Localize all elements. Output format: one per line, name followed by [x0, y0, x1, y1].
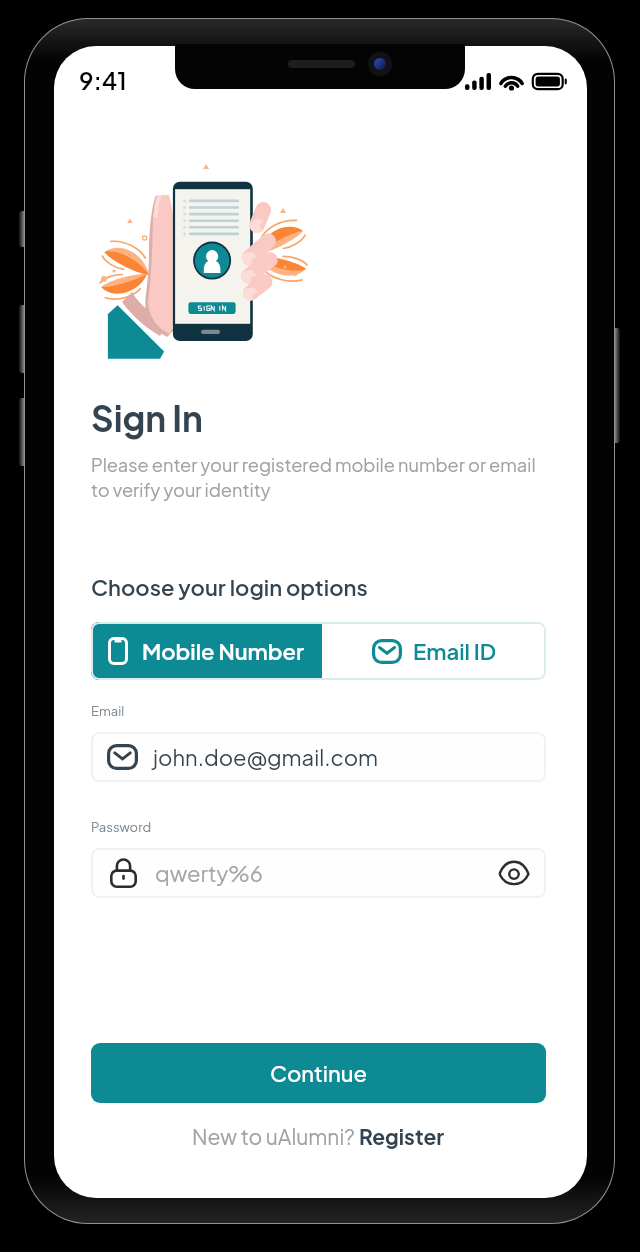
button[interactable]: qwerty%6 — [91, 848, 546, 898]
staticText: Password — [91, 819, 152, 835]
button[interactable]: Email ID — [322, 622, 546, 680]
button[interactable]: Register — [359, 1123, 445, 1149]
button[interactable]: Show password — [491, 850, 537, 896]
staticText: Sign In — [91, 396, 203, 440]
staticText: Choose your login options — [91, 573, 368, 601]
staticText: Mobile Number — [142, 637, 305, 665]
staticText: Continue — [270, 1059, 368, 1087]
button[interactable]: Continue — [91, 1043, 546, 1103]
staticText: Email ID — [413, 637, 497, 665]
staticText: Email — [91, 703, 125, 719]
staticText: New to uAlumni? — [192, 1123, 359, 1149]
staticText: Register — [359, 1123, 445, 1149]
button[interactable]: john.doe@gmail.com — [91, 732, 546, 782]
button[interactable]: Mobile Number — [91, 622, 322, 680]
staticText: john.doe@gmail.com — [153, 743, 379, 771]
staticText: 9:41 — [79, 65, 127, 95]
staticText: qwerty%6 — [155, 859, 263, 887]
staticText: Please enter your registered mobile numb… — [91, 453, 536, 501]
